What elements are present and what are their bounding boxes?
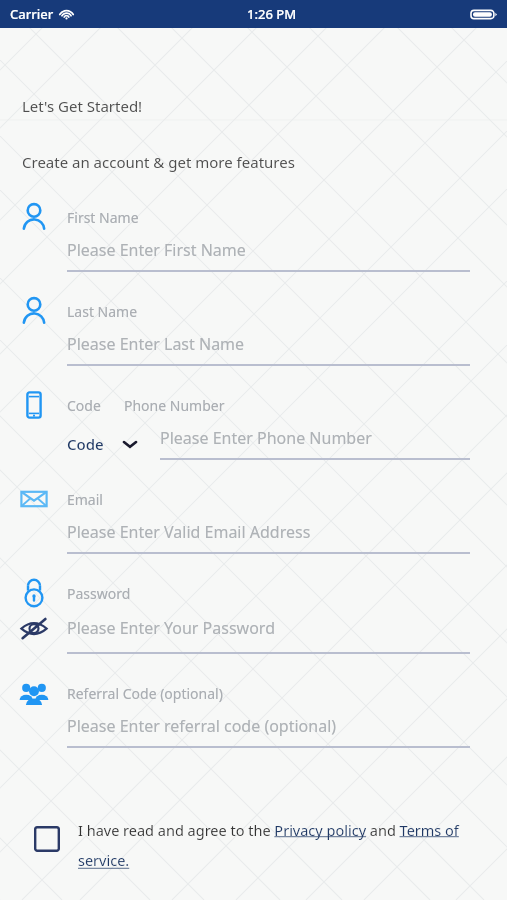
staticText: Password bbox=[67, 584, 131, 603]
staticText: Please Enter Last Name bbox=[67, 333, 245, 355]
staticText: Please Enter First Name bbox=[67, 239, 246, 261]
staticText: I have read and agree to the Privacy pol… bbox=[78, 820, 481, 871]
staticText: Let's Get Started! bbox=[22, 96, 143, 116]
button[interactable]: I have read and agree to the Privacy pol… bbox=[78, 820, 481, 871]
staticText: Please Enter Your Password bbox=[67, 617, 275, 639]
staticText: Please Enter Phone Number bbox=[160, 427, 372, 449]
button[interactable]: First Name bbox=[0, 202, 507, 296]
button[interactable]: Code bbox=[67, 434, 138, 454]
staticText: Please Enter referral code (optional) bbox=[67, 715, 337, 737]
staticText: Email bbox=[67, 490, 103, 509]
button[interactable]: Agree to terms checkbox bbox=[34, 826, 60, 852]
staticText: First Name bbox=[67, 208, 139, 227]
button[interactable]: Referral Code (optional) bbox=[0, 678, 507, 772]
staticText: Code bbox=[67, 396, 101, 415]
button[interactable]: Please Enter Phone Number bbox=[160, 427, 507, 460]
staticText: Carrier bbox=[10, 5, 54, 23]
staticText: Phone Number bbox=[124, 396, 225, 415]
button[interactable]: Last Name bbox=[0, 296, 507, 390]
button[interactable]: Password bbox=[0, 578, 507, 678]
staticText: Last Name bbox=[67, 302, 138, 321]
staticText: 1:26 PM bbox=[247, 5, 297, 23]
staticText: Create an account & get more features bbox=[22, 152, 295, 172]
staticText: Code bbox=[67, 434, 104, 454]
staticText: Please Enter Valid Email Address bbox=[67, 521, 311, 543]
button[interactable]: Email bbox=[0, 484, 507, 578]
staticText: Referral Code (optional) bbox=[67, 684, 223, 703]
button[interactable]: Show password bbox=[0, 613, 67, 643]
